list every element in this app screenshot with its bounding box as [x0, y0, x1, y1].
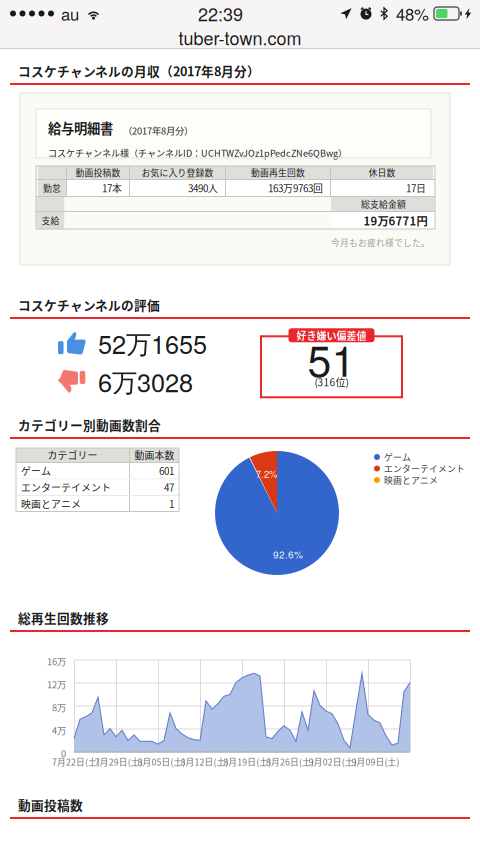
staticText: 8月26日(土) [266, 755, 314, 768]
staticText: 51 [307, 328, 355, 389]
staticText: 9月09日(土) [352, 755, 400, 768]
staticText: 4万 [52, 723, 66, 737]
staticText: 動画再生回数 [251, 166, 305, 179]
staticText: 映画とアニメ [21, 497, 81, 511]
staticText: 52万1655 [98, 325, 207, 361]
staticText: 支給 [41, 214, 59, 227]
staticText: 8月05日(土) [138, 755, 186, 768]
staticText: 給与明細書 [48, 118, 113, 137]
staticText: コスケチャンネルの評価 [18, 296, 160, 314]
staticText: 勤怠 [43, 182, 61, 194]
staticText: 92.6% [273, 547, 303, 561]
staticText: 動画本数 [134, 448, 174, 462]
staticText: 3490人 [188, 181, 218, 195]
staticText: 7.2% [256, 467, 277, 480]
staticText: お気に入り登録数 [141, 166, 213, 179]
staticText: カテゴリー [47, 448, 97, 462]
staticText: ゲーム [384, 451, 411, 463]
staticText: 163万9763回 [268, 181, 323, 195]
staticText: 16万 [47, 654, 66, 668]
staticText: 12万 [47, 677, 66, 691]
staticText: 17本 [102, 181, 122, 195]
staticText: 7月22日(土) [52, 755, 100, 768]
staticText: 総再生回数推移 [18, 609, 109, 627]
staticText: ゲーム [21, 464, 51, 478]
staticText: 8万 [52, 700, 66, 714]
staticText: コスケチャンネル様（チャンネルID：UCHTWZvJOz1pPedcZNe6QB… [48, 146, 347, 159]
staticText: (316位) [314, 374, 348, 389]
staticText: 8月12日(土) [180, 755, 228, 768]
staticText: 今月もお疲れ様でした。 [331, 236, 430, 249]
staticText: 好き嫌い偏差値 [296, 328, 366, 342]
staticText: 22:39 [198, 1, 243, 26]
staticText: 9月02日(土) [309, 755, 357, 768]
staticText: 1 [169, 497, 174, 511]
staticText: 0 [61, 746, 66, 760]
staticText: 休日数 [368, 166, 395, 179]
staticText: 映画とアニメ [384, 474, 438, 486]
staticText: tuber-town.com [178, 25, 301, 50]
staticText: カテゴリー別動画数割合 [18, 416, 161, 434]
staticText: 動画投稿数 [75, 166, 120, 179]
staticText: 19万6771円 [363, 212, 427, 229]
staticText: エンターテイメント [21, 480, 111, 494]
staticText: 6万3028 [98, 363, 193, 400]
staticText: 17日 [406, 181, 426, 195]
staticText: 48% [396, 2, 429, 25]
staticText: 動画投稿数 [18, 796, 83, 814]
staticText: 601 [159, 464, 174, 478]
staticText: 47 [164, 480, 174, 494]
staticText: エンターテイメント [384, 462, 465, 475]
staticText: コスケチャンネルの月収（2017年8月分） [18, 62, 260, 80]
staticText: au [61, 2, 79, 25]
staticText: 7月29日(土) [95, 755, 143, 768]
staticText: 総支給金額 [361, 198, 406, 210]
staticText: 8月19日(土) [223, 755, 271, 768]
staticText: （2017年8月分） [123, 124, 193, 137]
